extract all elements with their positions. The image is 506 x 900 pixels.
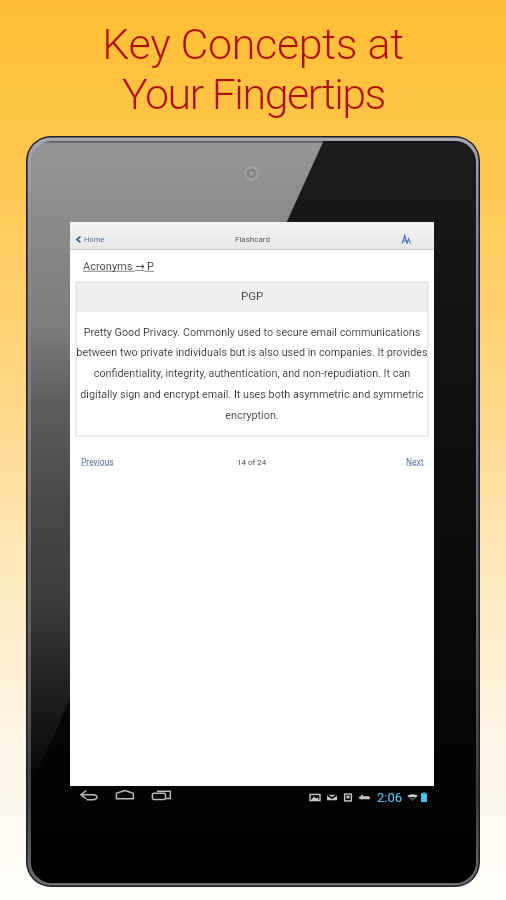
staticText: Flashcard — [235, 235, 270, 244]
staticText: 2:06 — [377, 790, 403, 805]
staticText: Key Concepts at — [102, 19, 404, 69]
button[interactable]: Back — [75, 787, 103, 807]
button[interactable]: Home — [70, 231, 111, 248]
button[interactable]: Next — [406, 457, 424, 467]
button[interactable]: Recent apps — [148, 787, 174, 807]
staticText: Pretty Good Privacy. Commonly used to se… — [76, 326, 428, 422]
button[interactable]: Previous — [81, 457, 114, 467]
staticText: 14 of 24 — [237, 458, 267, 467]
button[interactable]: Home — [110, 787, 134, 807]
staticText: Home — [84, 235, 105, 244]
button[interactable]: Acronyms → P — [83, 260, 155, 273]
staticText: PGP — [241, 289, 264, 302]
button[interactable]: Text size — [394, 229, 434, 250]
staticText: Your Fingertips — [122, 69, 385, 119]
